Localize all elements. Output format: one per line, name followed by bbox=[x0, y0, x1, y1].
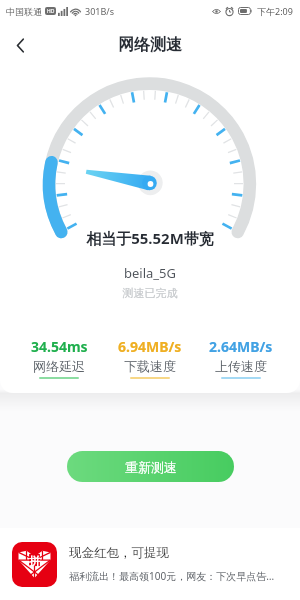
staticText: 福利流出！最高领100元，网友：下次早点告… bbox=[69, 569, 275, 583]
staticText: 2.64MB/s bbox=[209, 337, 273, 356]
staticText: 34.54ms bbox=[31, 337, 88, 356]
staticText: 测速已完成 bbox=[0, 286, 300, 300]
button[interactable]: 拼 bbox=[12, 528, 290, 600]
button[interactable]: Back bbox=[0, 25, 40, 65]
staticText: 现金红包，可提现 bbox=[69, 545, 169, 561]
staticText: 网络测速 bbox=[118, 35, 182, 55]
staticText: 重新测速 bbox=[125, 459, 177, 475]
staticText: 拼 bbox=[29, 554, 40, 568]
staticText: beila_5G bbox=[0, 264, 300, 282]
staticText: 下午2:09 bbox=[257, 5, 293, 17]
button[interactable]: 重新测速 bbox=[67, 451, 234, 482]
staticText: 相当于55.52M带宽 bbox=[0, 228, 300, 248]
staticText: 中国联通 bbox=[6, 6, 42, 17]
staticText: 上传速度 bbox=[215, 358, 267, 374]
staticText: 下载速度 bbox=[124, 358, 176, 374]
staticText: 6.94MB/s bbox=[118, 337, 182, 356]
staticText: 网络延迟 bbox=[33, 358, 85, 374]
staticText: 301B/s bbox=[85, 5, 114, 17]
staticText: HD bbox=[47, 8, 55, 15]
